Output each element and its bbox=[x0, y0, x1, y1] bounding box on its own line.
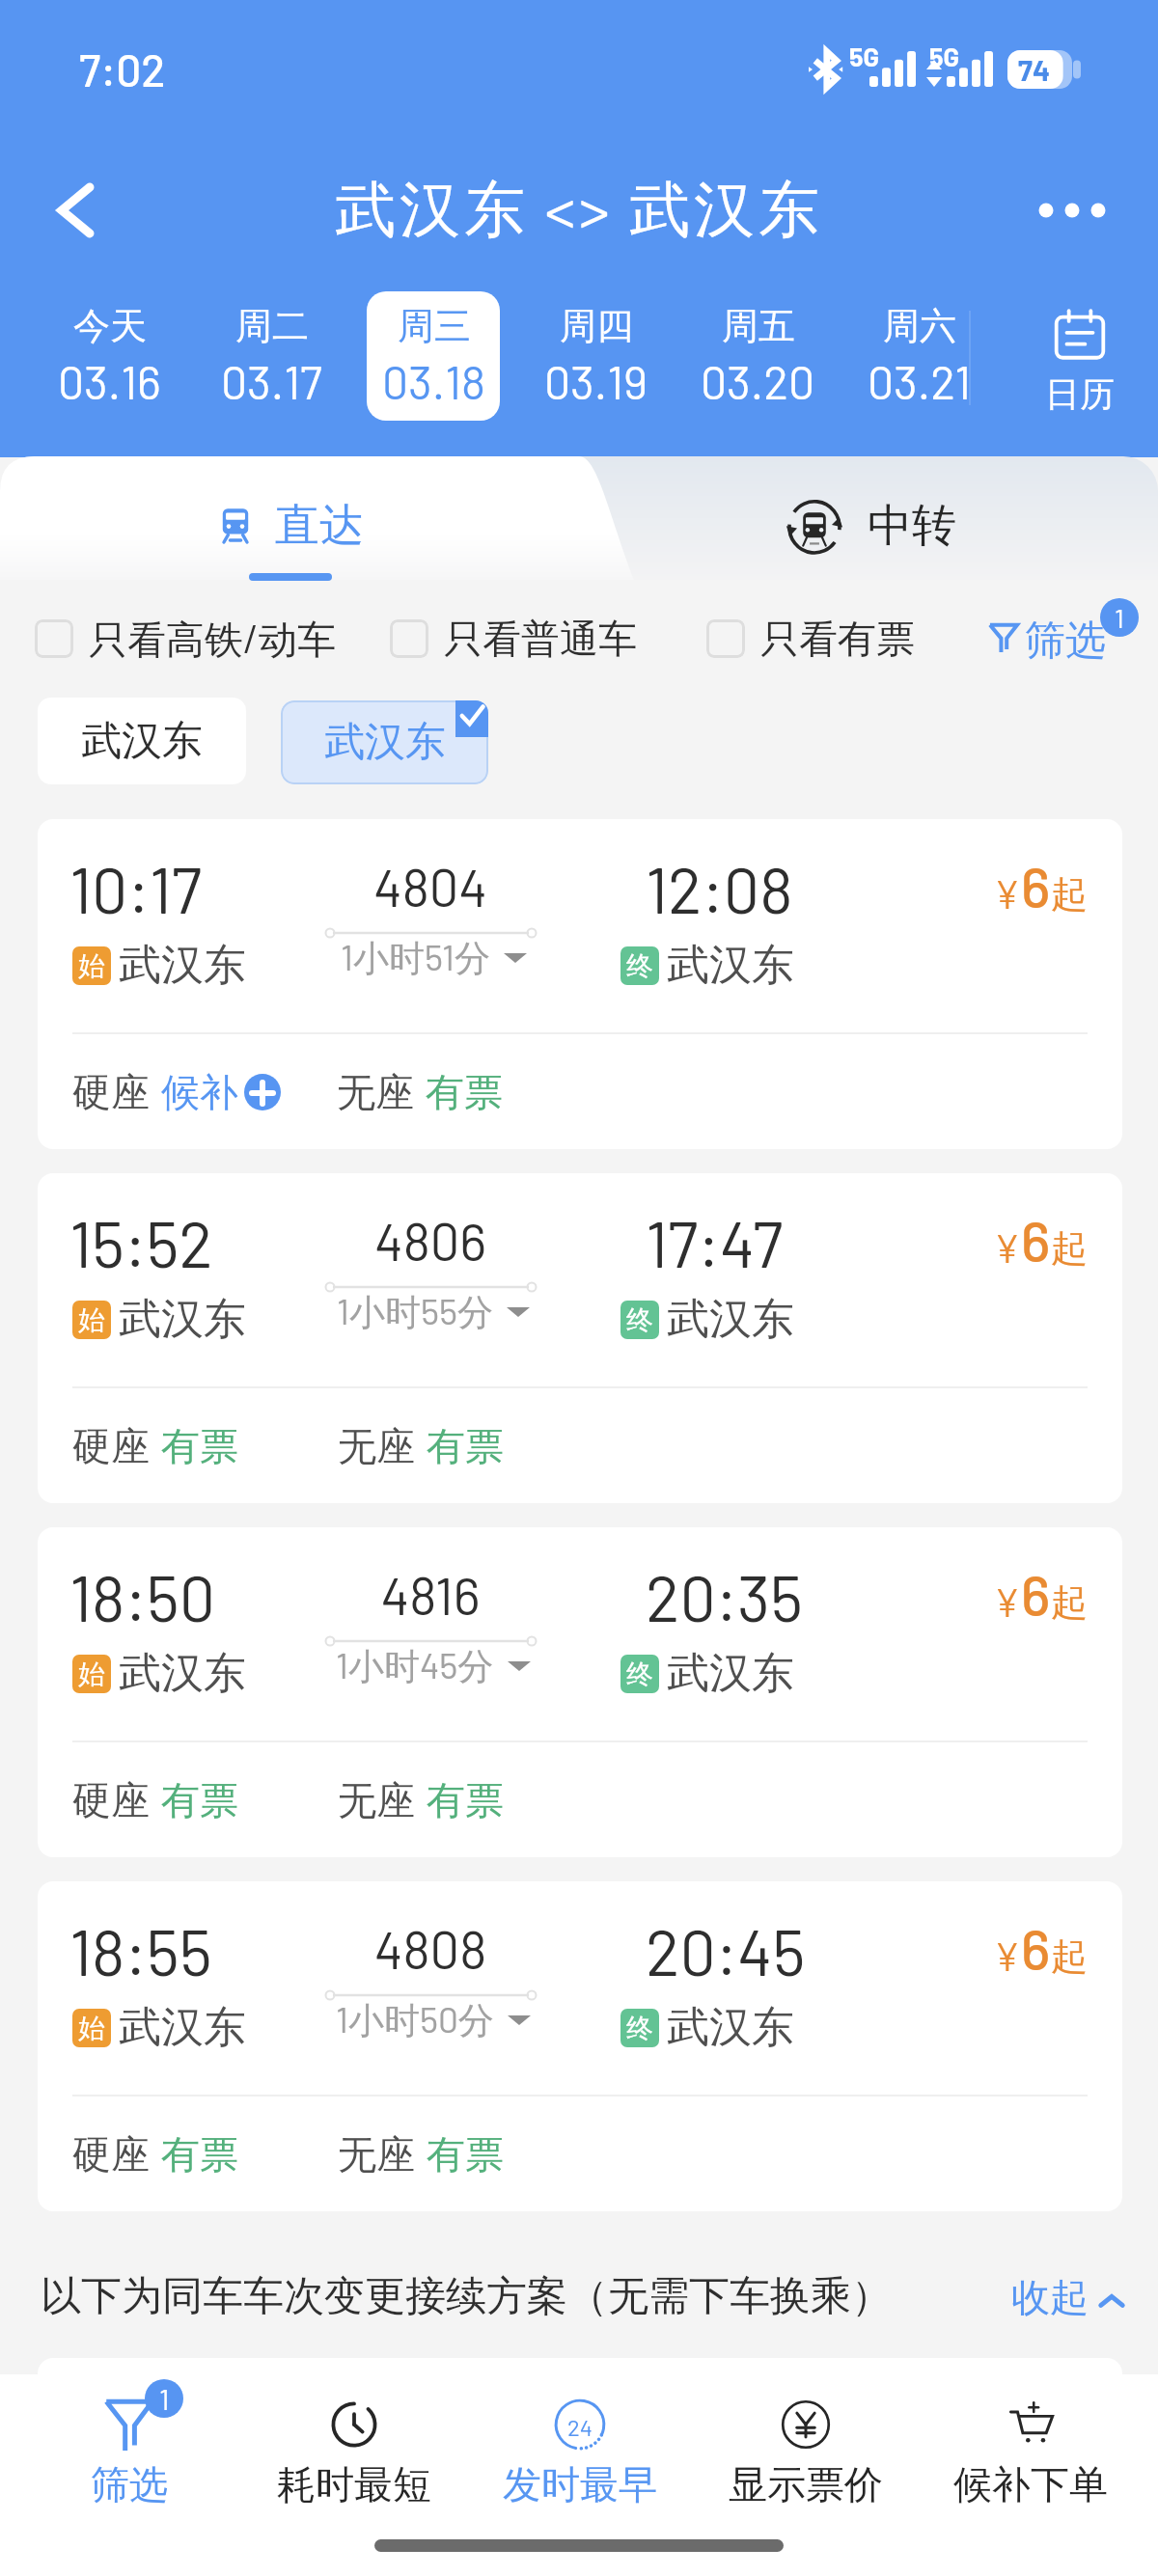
staticText: 武汉东 bbox=[667, 1293, 794, 1346]
staticText: 筛选 bbox=[1025, 616, 1106, 667]
staticText: 始 bbox=[78, 1303, 105, 1337]
button[interactable] bbox=[693, 2374, 919, 2519]
button[interactable]: 周五 bbox=[691, 291, 824, 421]
button[interactable]: 周六 bbox=[853, 291, 986, 421]
staticText: 12:08 bbox=[646, 850, 793, 926]
staticText: 候补 bbox=[161, 1068, 238, 1116]
staticText: 有票 bbox=[426, 1068, 503, 1116]
staticText: 始 bbox=[78, 1658, 105, 1691]
staticText: 周六 bbox=[883, 303, 956, 349]
button[interactable]: 18:55 bbox=[38, 1881, 1122, 2211]
staticText: 6 bbox=[1021, 852, 1051, 919]
button[interactable] bbox=[918, 2374, 1144, 2519]
staticText: 武汉东 bbox=[324, 717, 446, 768]
staticText: 武汉东 bbox=[667, 1647, 794, 1700]
button[interactable]: 只看高铁/动车 bbox=[35, 615, 336, 663]
button[interactable] bbox=[58, 456, 521, 580]
staticText: 20:35 bbox=[646, 1558, 803, 1634]
staticText: 发时最早 bbox=[503, 2460, 657, 2508]
staticText: 周五 bbox=[722, 303, 795, 349]
staticText: ¥ bbox=[994, 1578, 1021, 1625]
staticText: 1 bbox=[1115, 601, 1124, 634]
staticText: 收起 bbox=[1011, 2273, 1089, 2321]
button[interactable] bbox=[241, 2374, 467, 2519]
staticText: 终 bbox=[626, 949, 653, 983]
staticText: 起 bbox=[1051, 871, 1088, 918]
staticText: 6 bbox=[1021, 1560, 1051, 1628]
staticText: 只看普通车 bbox=[444, 615, 637, 663]
button[interactable]: 周三 bbox=[367, 291, 500, 421]
staticText: 今天 bbox=[73, 303, 147, 349]
staticText: 03.18 bbox=[382, 353, 485, 409]
staticText: 起 bbox=[1051, 1933, 1088, 1980]
staticText: 7:02 bbox=[79, 42, 166, 96]
staticText: 显示票价 bbox=[729, 2460, 883, 2508]
staticText: 无座 bbox=[338, 1776, 415, 1824]
staticText: 武汉东 bbox=[119, 1647, 246, 1700]
button[interactable]: 武汉东 bbox=[281, 700, 488, 784]
staticText: 有票 bbox=[427, 1422, 504, 1470]
staticText: 1小时50分 bbox=[336, 1997, 494, 2043]
button[interactable] bbox=[977, 604, 1112, 675]
button[interactable]: 今天 bbox=[42, 291, 176, 421]
button[interactable]: 18:50 bbox=[38, 1527, 1122, 1857]
staticText: 武汉东 <> 武汉东 bbox=[0, 170, 1158, 249]
staticText: 终 bbox=[626, 1303, 653, 1337]
staticText: 4804 bbox=[315, 855, 546, 918]
staticText: 03.19 bbox=[544, 353, 648, 409]
staticText: 18:50 bbox=[69, 1558, 216, 1634]
staticText: 有票 bbox=[161, 1422, 238, 1470]
staticText: ¥ bbox=[994, 870, 1021, 917]
staticText: 有票 bbox=[427, 1776, 504, 1824]
staticText: 起 bbox=[1051, 1579, 1088, 1626]
button[interactable]: 日历 bbox=[1009, 297, 1150, 426]
staticText: 10:17 bbox=[69, 850, 203, 926]
staticText: 5G bbox=[929, 41, 960, 71]
button[interactable]: 周二 bbox=[205, 291, 338, 421]
staticText: 无座 bbox=[338, 1422, 415, 1470]
staticText: 武汉东 bbox=[667, 2001, 794, 2054]
staticText: 03.20 bbox=[701, 353, 815, 409]
staticText: 有票 bbox=[161, 2130, 238, 2179]
button[interactable]: Back bbox=[32, 167, 119, 254]
staticText: ¥ bbox=[994, 1932, 1021, 1979]
staticText: 20:45 bbox=[646, 1912, 806, 1988]
staticText: 武汉东 bbox=[81, 716, 203, 767]
staticText: 4808 bbox=[315, 1917, 546, 1980]
button[interactable] bbox=[16, 2374, 242, 2519]
staticText: 武汉东 bbox=[119, 1293, 246, 1346]
button[interactable]: 只看有票 bbox=[706, 615, 915, 663]
button[interactable]: 武汉东 bbox=[38, 698, 246, 784]
staticText: 无座 bbox=[337, 1068, 414, 1116]
staticText: 无座 bbox=[338, 2130, 415, 2179]
staticText: 4816 bbox=[315, 1563, 546, 1626]
staticText: 有票 bbox=[161, 1776, 238, 1824]
staticText: 硬座 bbox=[72, 2130, 150, 2179]
staticText: 武汉东 bbox=[119, 2001, 246, 2054]
button[interactable] bbox=[675, 456, 1100, 580]
button[interactable]: More options bbox=[1009, 148, 1135, 273]
staticText: 硬座 bbox=[72, 1776, 150, 1824]
button[interactable]: 以下为同车车次变更接续方案（无需下车换乘） bbox=[0, 2236, 1158, 2358]
button[interactable]: 15:52 bbox=[38, 1173, 1122, 1503]
staticText: 耗时最短 bbox=[277, 2460, 431, 2508]
button[interactable]: 只看普通车 bbox=[390, 615, 637, 663]
button[interactable]: 周四 bbox=[529, 291, 662, 421]
button[interactable]: 10:17 bbox=[38, 819, 1122, 1149]
staticText: 硬座 bbox=[72, 1422, 150, 1470]
staticText: 18:55 bbox=[69, 1912, 212, 1988]
staticText: 1 bbox=[159, 2381, 170, 2416]
staticText: ¥ bbox=[994, 1224, 1021, 1271]
staticText: 日历 bbox=[1045, 372, 1115, 416]
staticText: 周三 bbox=[398, 303, 471, 349]
staticText: 1小时55分 bbox=[337, 1289, 493, 1335]
staticText: 4806 bbox=[315, 1209, 546, 1272]
staticText: 筛选 bbox=[52, 2460, 207, 2508]
staticText: 24 bbox=[503, 2413, 657, 2441]
staticText: 直达 bbox=[275, 498, 364, 554]
staticText: 周四 bbox=[560, 303, 633, 349]
staticText: 74 bbox=[1018, 52, 1051, 87]
staticText: 只看有票 bbox=[760, 615, 915, 663]
button[interactable] bbox=[467, 2374, 693, 2519]
staticText: 6 bbox=[1021, 1206, 1051, 1274]
